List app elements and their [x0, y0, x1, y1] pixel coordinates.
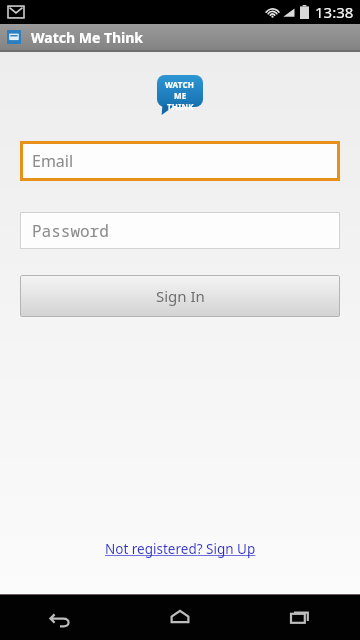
button[interactable]: Email: [20, 141, 340, 181]
staticText: 13:38: [315, 2, 354, 22]
staticText: Password: [32, 220, 109, 242]
button[interactable]: Sign In: [20, 275, 340, 317]
staticText: Sign In: [156, 286, 205, 306]
button[interactable]: Home: [120, 595, 240, 640]
staticText: ME: [174, 90, 187, 101]
button[interactable]: Password: [20, 212, 340, 249]
staticText: Not registered? Sign Up: [105, 540, 256, 558]
staticText: THINK: [167, 101, 194, 112]
button[interactable]: Not registered? Sign Up: [99, 537, 262, 561]
staticText: WATCH: [165, 79, 195, 90]
button[interactable]: Back: [0, 595, 120, 640]
button[interactable]: Recents: [240, 595, 360, 640]
staticText: Watch Me Think: [31, 28, 144, 47]
staticText: Email: [32, 150, 74, 172]
